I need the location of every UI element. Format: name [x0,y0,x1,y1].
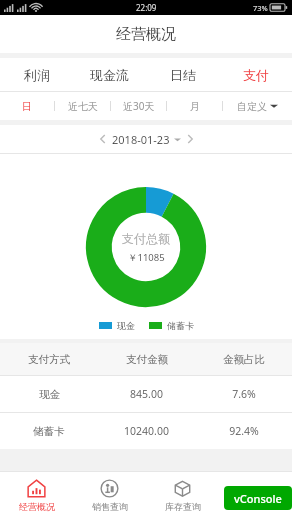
button[interactable]: 现金流 [73,58,146,91]
button[interactable]: 现金 [0,376,292,412]
staticText: 现金 [39,388,60,401]
button[interactable]: Next day [181,130,199,148]
staticText: 10240.00 [124,424,169,438]
button[interactable]: vConsole [224,486,292,510]
staticText: 845.00 [130,387,163,401]
staticText: 储蓄卡 [167,320,194,331]
staticText: 经营概况 [19,501,55,512]
button[interactable]: 日结 [146,58,219,91]
staticText: 自定义 [237,100,267,113]
button[interactable]: 储蓄卡 [0,413,292,449]
staticText: 73% [253,3,268,13]
button[interactable]: 自定义 [223,92,292,120]
staticText: 日结 [170,67,196,83]
staticText: 经营概况 [116,25,176,44]
staticText: 近七天 [68,100,98,113]
staticText: 销售查询 [92,501,128,512]
staticText: 22:09 [136,2,157,13]
staticText: 现金流 [90,67,129,83]
button[interactable]: 近30天 [111,92,166,120]
button[interactable]: 月 [167,92,222,120]
staticText: 利润 [24,67,50,83]
staticText: 支付 [243,67,269,83]
button[interactable]: 经营概况 [0,472,73,519]
button[interactable]: Previous day [94,130,112,148]
staticText: vConsole [234,491,282,506]
staticText: 现金 [117,320,135,331]
staticText: 库存查询 [165,501,201,512]
button[interactable]: 日 [0,92,54,120]
staticText: ￥11085 [128,251,165,264]
staticText: 支付金额 [126,353,168,366]
button[interactable]: 近七天 [55,92,110,120]
staticText: 支付总额 [122,231,170,246]
staticText: 近30天 [123,99,155,113]
button[interactable]: 2018-01-23 [112,132,181,147]
staticText: 金额占比 [223,353,265,366]
button[interactable]: 库存查询 [146,472,219,519]
staticText: 7.6% [232,387,256,401]
staticText: 支付方式 [28,353,70,366]
staticText: 储蓄卡 [33,425,65,438]
button[interactable]: 销售查询 [73,472,146,519]
button[interactable]: 利润 [0,58,73,91]
staticText: 月 [190,100,200,113]
button[interactable]: 支付 [219,58,292,91]
staticText: 92.4% [229,424,259,438]
staticText: 2018-01-23 [112,132,170,147]
staticText: 日 [22,100,32,113]
